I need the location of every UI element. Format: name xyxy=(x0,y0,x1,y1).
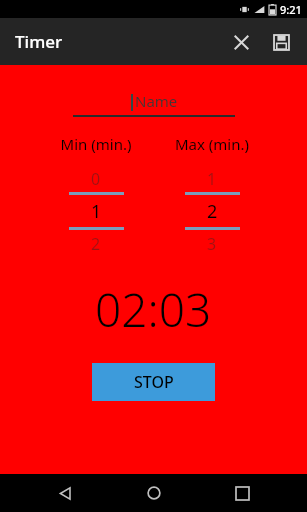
button[interactable]: 1 xyxy=(157,166,267,258)
staticText: Min (min.) xyxy=(41,134,151,154)
staticText: 2 xyxy=(91,233,101,255)
staticText: 1 xyxy=(207,168,217,190)
button[interactable]: Name xyxy=(73,87,235,117)
staticText: STOP xyxy=(134,371,174,393)
staticText: 02:03 xyxy=(95,278,212,341)
staticText: Max (min.) xyxy=(157,134,267,154)
button[interactable]: Back xyxy=(41,474,89,512)
staticText: 3 xyxy=(207,233,217,255)
staticText: 1 xyxy=(91,199,102,224)
staticText: 0 xyxy=(91,168,101,190)
button[interactable]: 0 xyxy=(41,166,151,258)
staticText: Timer xyxy=(15,30,63,53)
button[interactable]: Recents xyxy=(218,474,266,512)
staticText: Name xyxy=(135,91,178,111)
button[interactable]: Home xyxy=(130,474,178,512)
button[interactable]: STOP xyxy=(92,363,215,401)
staticText: 2 xyxy=(207,199,218,224)
staticText: 9:21 xyxy=(280,2,302,17)
button[interactable]: Close xyxy=(221,22,261,62)
button[interactable]: Save xyxy=(261,22,301,62)
